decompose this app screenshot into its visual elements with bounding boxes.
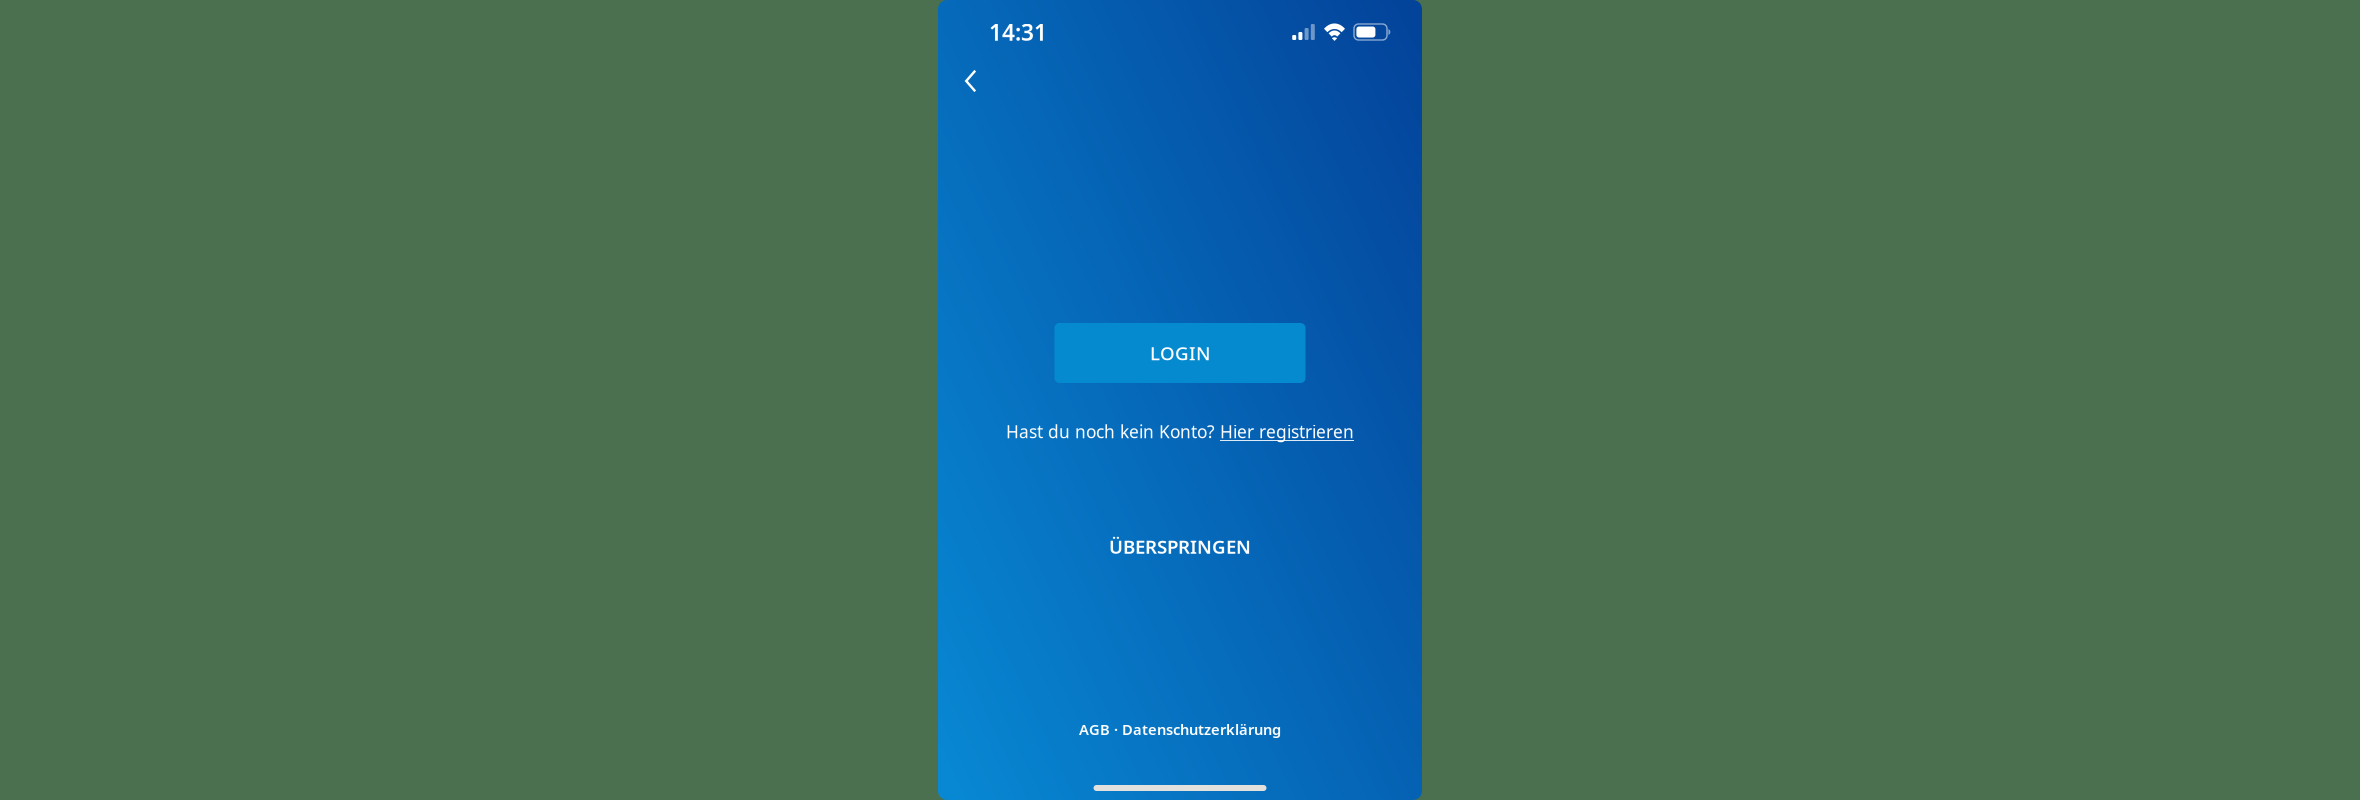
staticText: Hier registrieren	[1220, 420, 1354, 443]
staticText: Hast du noch kein Konto?	[1006, 420, 1220, 443]
button[interactable]: Datenschutzerklärung	[1122, 719, 1281, 739]
button[interactable]: Hier registrieren	[1220, 420, 1354, 443]
staticText: AGB	[1079, 719, 1110, 739]
staticText: Datenschutzerklärung	[1122, 719, 1281, 739]
staticText: ·	[1110, 719, 1122, 739]
button[interactable]: LOGIN	[1054, 323, 1305, 383]
staticText: 14:31	[989, 17, 1047, 47]
staticText: ÜBERSPRINGEN	[1109, 534, 1251, 559]
button[interactable]: AGB	[1079, 719, 1110, 739]
button[interactable]: ÜBERSPRINGEN	[1085, 522, 1275, 571]
staticText: LOGIN	[1150, 341, 1210, 365]
button[interactable]: Back	[938, 64, 994, 109]
